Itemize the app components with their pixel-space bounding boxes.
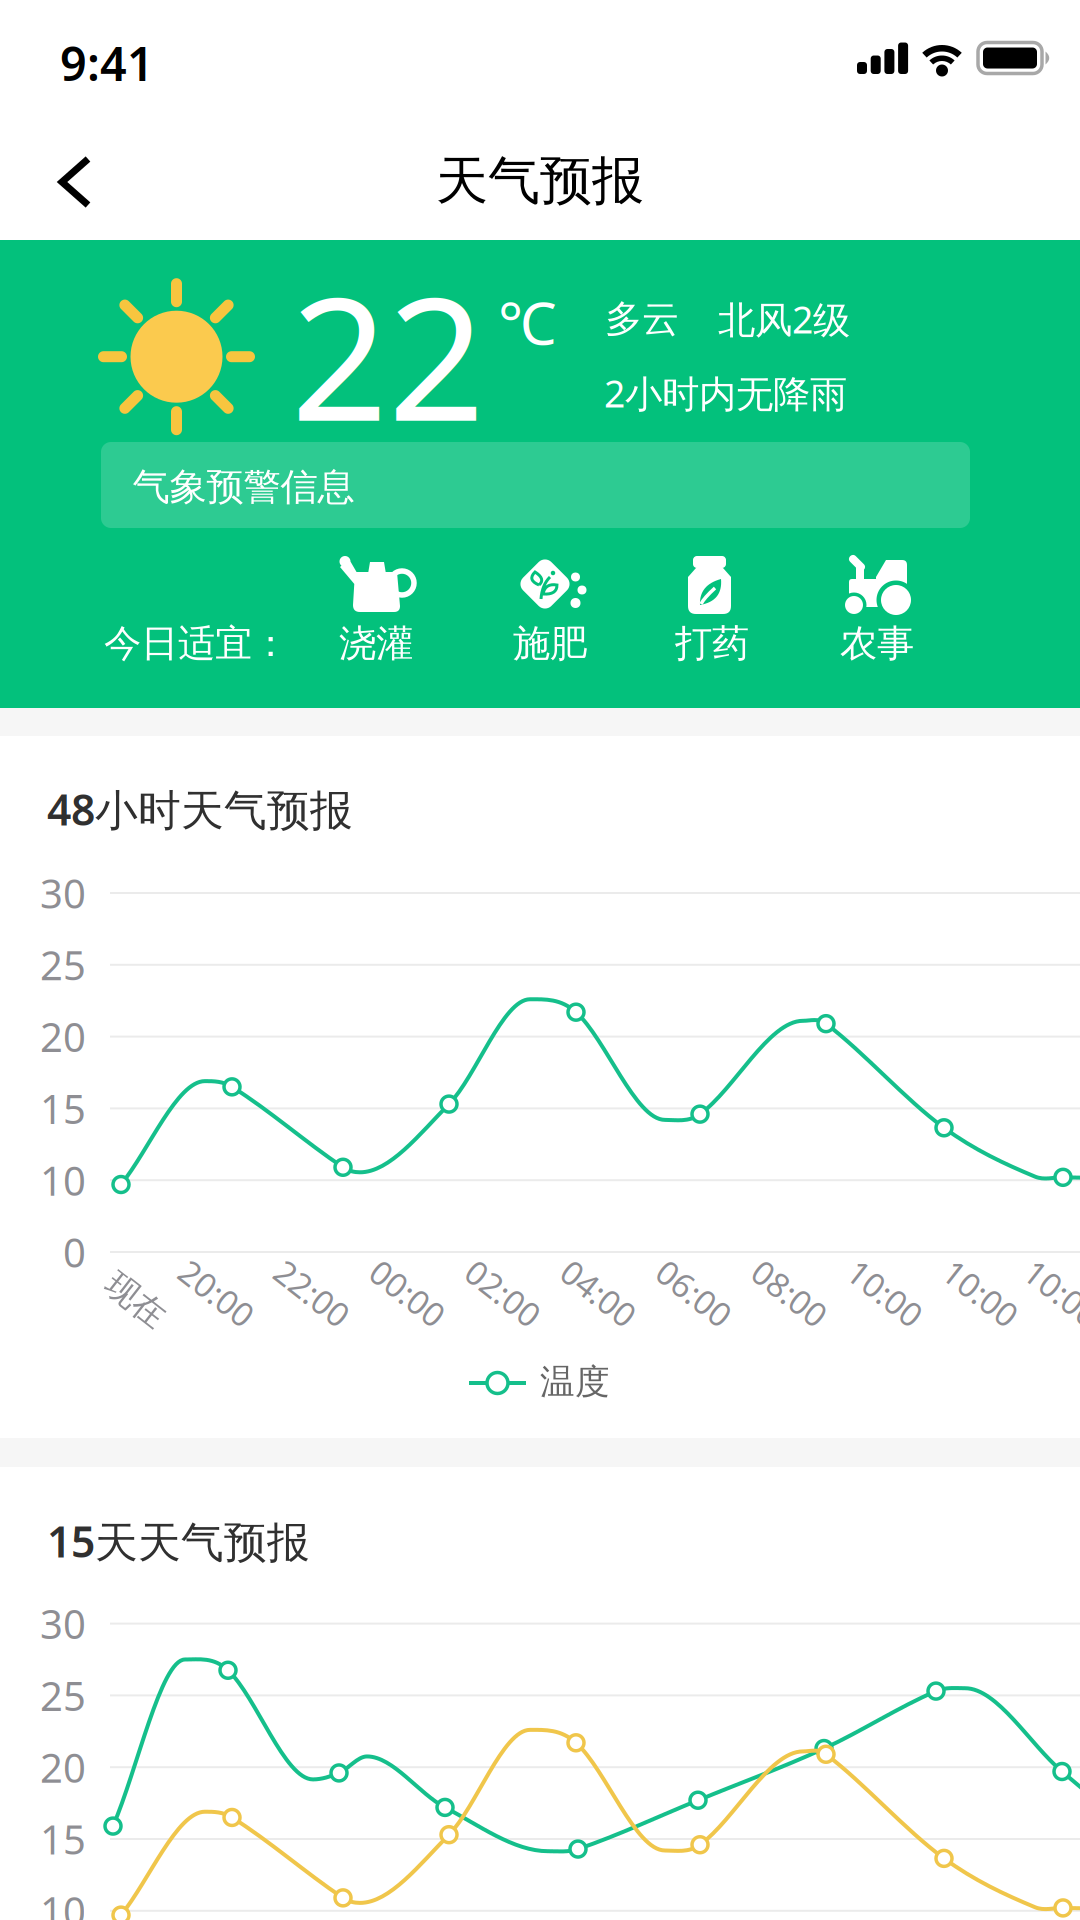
staticText: 农事 bbox=[840, 621, 914, 666]
staticText: 48小时天气预报 bbox=[47, 781, 353, 837]
staticText: 现在 bbox=[102, 1279, 168, 1320]
staticText: 10:00 bbox=[1019, 1271, 1080, 1315]
staticText: ℃ bbox=[498, 283, 556, 361]
staticText: 10 bbox=[40, 1154, 86, 1207]
staticText: 25 bbox=[40, 1669, 86, 1722]
staticText: 2小时内无降雨 bbox=[604, 368, 847, 418]
staticText: 9:41 bbox=[60, 32, 154, 94]
staticText: 30 bbox=[40, 866, 86, 919]
staticText: 施肥 bbox=[513, 621, 587, 666]
staticText: 0 bbox=[63, 1225, 86, 1278]
staticText: 00:00 bbox=[365, 1271, 450, 1315]
staticText: 温度 bbox=[540, 1361, 610, 1403]
staticText: 浇灌 bbox=[339, 621, 413, 666]
staticText: 北风2级 bbox=[718, 294, 850, 344]
staticText: 10:00 bbox=[843, 1271, 928, 1315]
staticText: 20 bbox=[40, 1010, 86, 1063]
staticText: 04:00 bbox=[556, 1271, 641, 1315]
staticText: 10 bbox=[40, 1884, 86, 1920]
button[interactable]: 气象预警信息 bbox=[101, 442, 970, 528]
staticText: 打药 bbox=[675, 621, 749, 666]
button[interactable] bbox=[49, 146, 121, 218]
staticText: 今日适宜： bbox=[104, 621, 289, 666]
staticText: 06:00 bbox=[652, 1271, 737, 1315]
staticText: 08:00 bbox=[747, 1271, 832, 1315]
staticText: 天气预报 bbox=[436, 149, 644, 213]
staticText: 15 bbox=[40, 1812, 86, 1865]
staticText: 30 bbox=[40, 1597, 86, 1650]
staticText: 22 bbox=[291, 243, 485, 467]
staticText: 10:00 bbox=[938, 1271, 1023, 1315]
staticText: 22:00 bbox=[270, 1271, 355, 1315]
staticText: 02:00 bbox=[461, 1271, 546, 1315]
staticText: 15 bbox=[40, 1082, 86, 1135]
staticText: 气象预警信息 bbox=[132, 464, 354, 510]
staticText: 20 bbox=[40, 1741, 86, 1794]
staticText: 多云 bbox=[605, 296, 679, 342]
staticText: 25 bbox=[40, 938, 86, 991]
staticText: 20:00 bbox=[174, 1271, 259, 1315]
staticText: 15天天气预报 bbox=[47, 1513, 310, 1569]
